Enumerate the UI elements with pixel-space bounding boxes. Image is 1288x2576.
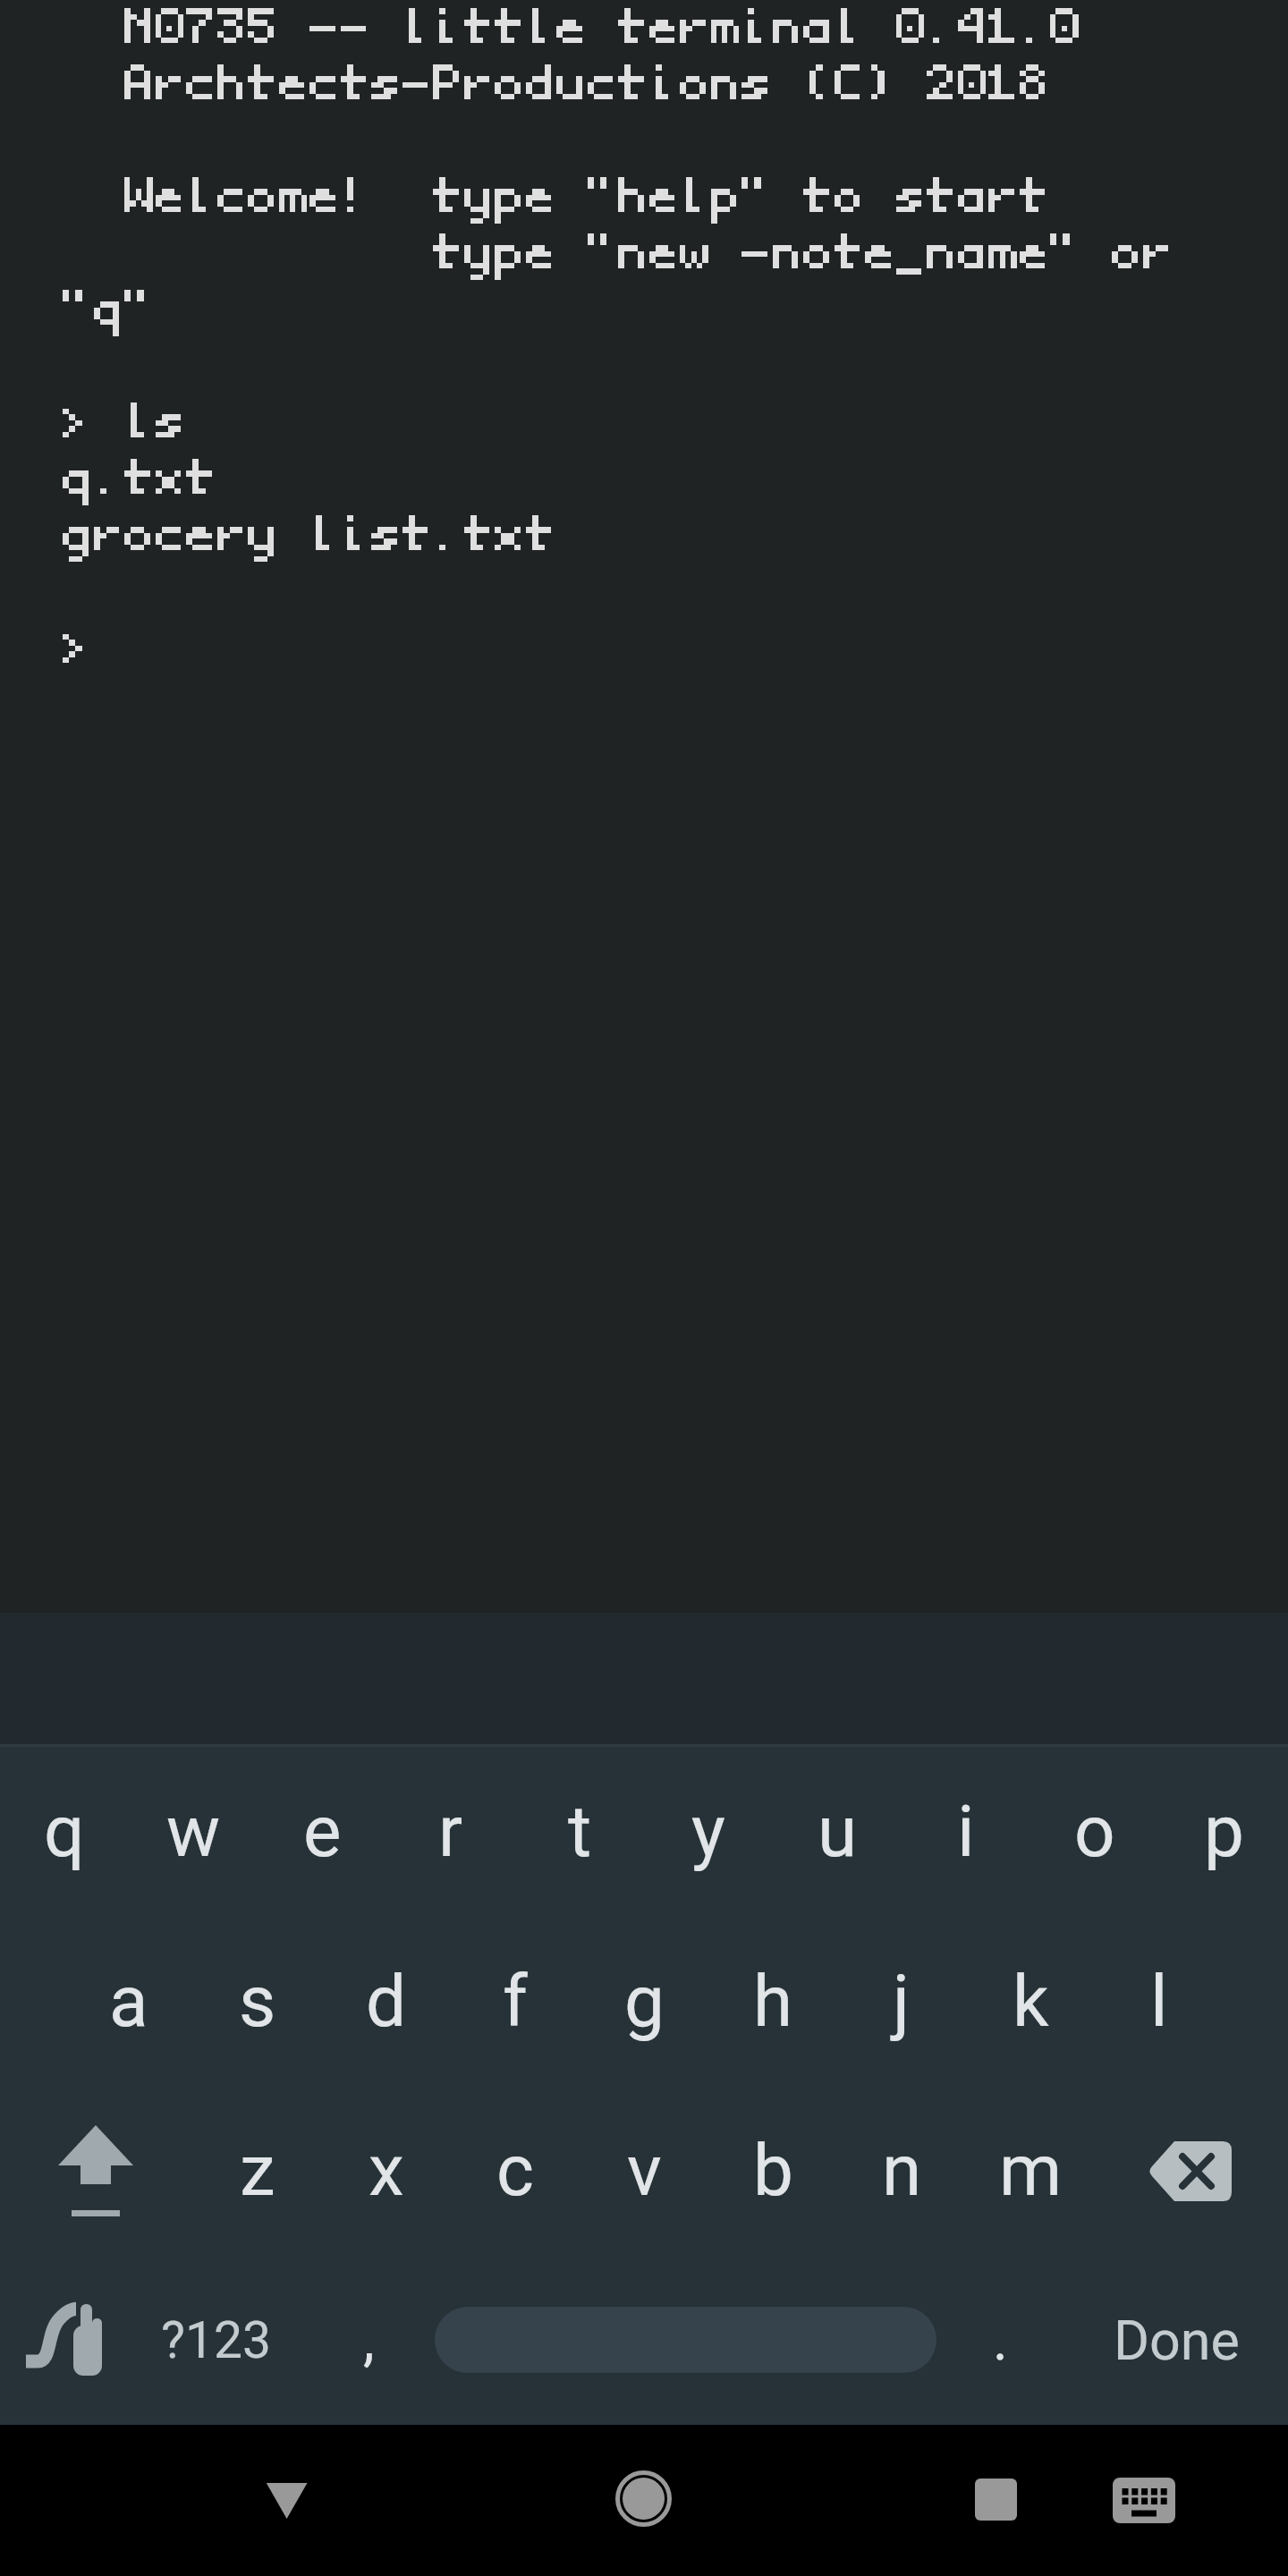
- button[interactable]: h: [708, 1917, 837, 2087]
- staticText: i: [957, 1790, 975, 1874]
- button[interactable]: y: [644, 1747, 773, 1917]
- button[interactable]: d: [322, 1917, 451, 2087]
- button[interactable]: t: [515, 1747, 644, 1917]
- button[interactable]: w: [129, 1747, 258, 1917]
- staticText: p: [1204, 1790, 1244, 1874]
- staticText: m: [999, 2129, 1063, 2213]
- button[interactable]: r: [386, 1747, 515, 1917]
- staticText: ?123: [161, 2310, 272, 2370]
- staticText: u: [818, 1790, 858, 1874]
- button[interactable]: [241, 2460, 335, 2554]
- staticText: z: [240, 2129, 275, 2213]
- button[interactable]: m: [966, 2086, 1095, 2256]
- staticText: s: [239, 1960, 276, 2044]
- staticText: j: [893, 1960, 911, 2044]
- staticText: q: [44, 1790, 85, 1874]
- staticText: t: [568, 1790, 592, 1874]
- staticText: v: [627, 2129, 662, 2213]
- button[interactable]: x: [322, 2086, 451, 2256]
- button[interactable]: [597, 2453, 690, 2545]
- button[interactable]: a: [64, 1917, 193, 2087]
- button[interactable]: ?123: [131, 2256, 302, 2425]
- button[interactable]: s: [193, 1917, 322, 2087]
- staticText: l: [1150, 1960, 1168, 2044]
- staticText: f: [503, 1960, 528, 2044]
- button[interactable]: z: [193, 2086, 322, 2256]
- staticText: y: [691, 1790, 725, 1874]
- button[interactable]: [0, 2086, 193, 2256]
- button[interactable]: n: [837, 2086, 966, 2256]
- button[interactable]: [435, 2307, 936, 2373]
- button[interactable]: .: [936, 2256, 1064, 2425]
- button[interactable]: o: [1030, 1747, 1159, 1917]
- staticText: g: [624, 1960, 665, 2044]
- button[interactable]: p: [1159, 1747, 1288, 1917]
- button[interactable]: u: [773, 1747, 902, 1917]
- button[interactable]: f: [451, 1917, 580, 2087]
- staticText: Done: [1114, 2309, 1240, 2372]
- staticText: a: [109, 1960, 148, 2044]
- staticText: b: [753, 2129, 793, 2213]
- button[interactable]: k: [966, 1917, 1095, 2087]
- button[interactable]: g: [580, 1917, 708, 2087]
- button[interactable]: v: [580, 2086, 708, 2256]
- button[interactable]: [0, 2256, 131, 2425]
- button[interactable]: Done: [1064, 2256, 1288, 2425]
- button[interactable]: [1095, 2086, 1288, 2256]
- button[interactable]: b: [708, 2086, 837, 2256]
- staticText: .: [993, 2307, 1008, 2374]
- button[interactable]: c: [451, 2086, 580, 2256]
- staticText: n: [882, 2129, 922, 2213]
- staticText: w: [166, 1790, 221, 1874]
- staticText: c: [496, 2129, 534, 2213]
- staticText: d: [366, 1960, 407, 2044]
- button[interactable]: i: [902, 1747, 1030, 1917]
- staticText: o: [1074, 1790, 1115, 1874]
- button[interactable]: q: [0, 1747, 129, 1917]
- button[interactable]: ,: [302, 2256, 435, 2425]
- staticText: r: [438, 1790, 463, 1874]
- staticText: x: [369, 2129, 404, 2213]
- button[interactable]: l: [1095, 1917, 1224, 2087]
- button[interactable]: [950, 2453, 1042, 2545]
- staticText: ,: [363, 2307, 375, 2374]
- button[interactable]: e: [258, 1747, 386, 1917]
- staticText: e: [303, 1790, 342, 1874]
- button[interactable]: j: [837, 1917, 966, 2087]
- button[interactable]: [1100, 2453, 1199, 2545]
- staticText: k: [1013, 1960, 1049, 2044]
- staticText: h: [753, 1960, 793, 2044]
